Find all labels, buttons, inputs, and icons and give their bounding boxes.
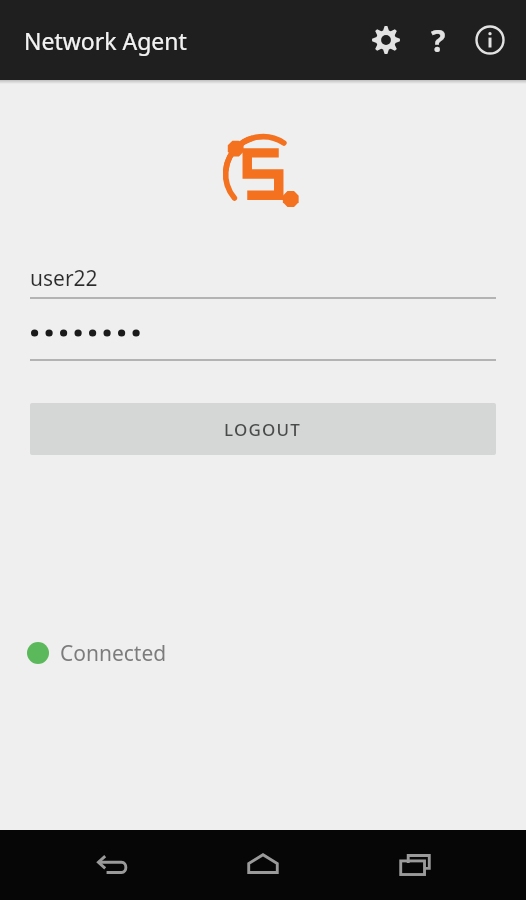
staticText: Network Agent	[24, 25, 187, 56]
button[interactable]: Settings	[360, 14, 412, 66]
button[interactable]: About	[464, 14, 516, 66]
button[interactable]: Recent apps	[375, 830, 455, 900]
staticText: LOGOUT	[224, 418, 302, 441]
staticText: Connected	[60, 639, 167, 668]
staticText: user22	[30, 264, 98, 293]
button[interactable]: user22	[30, 259, 496, 297]
button[interactable]	[30, 317, 496, 349]
button[interactable]: Back	[72, 830, 152, 900]
staticText: ?	[431, 20, 446, 61]
button[interactable]: Home	[223, 830, 303, 900]
button[interactable]: Help	[412, 14, 464, 66]
button[interactable]: LOGOUT	[30, 403, 496, 455]
